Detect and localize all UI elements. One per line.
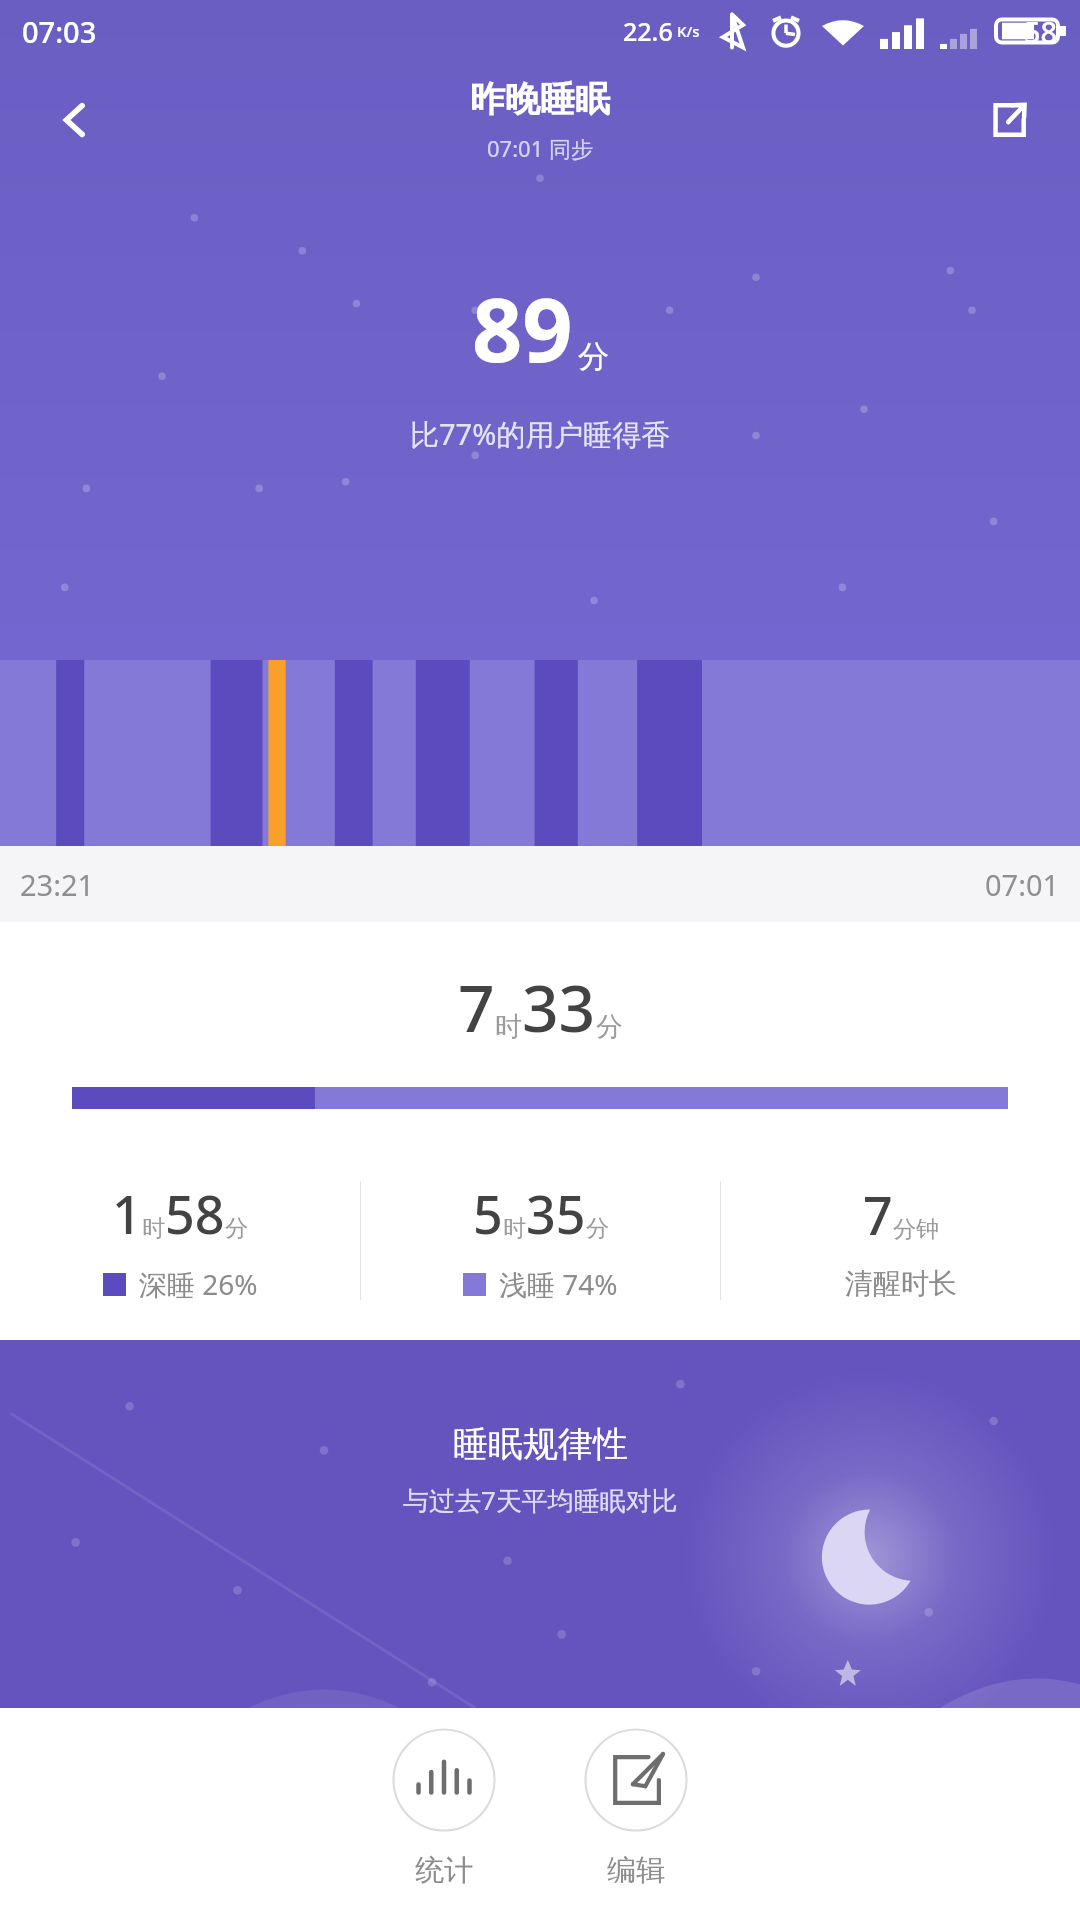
button[interactable]: Share xyxy=(976,87,1042,153)
staticText: 昨晚睡眠 xyxy=(470,77,610,121)
staticText: 7 xyxy=(863,1179,893,1250)
staticText: 统计 xyxy=(415,1852,473,1889)
button[interactable]: 7 xyxy=(721,1155,1080,1325)
button[interactable]: 5 xyxy=(361,1155,720,1325)
staticText: 分 xyxy=(578,337,609,376)
button[interactable]: Edit xyxy=(584,1728,688,1889)
staticText: 与过去7天平均睡眠对比 xyxy=(403,1482,678,1518)
staticText: 22.6 xyxy=(623,14,673,48)
staticText: 5 xyxy=(473,1178,503,1249)
staticText: 分钟 xyxy=(893,1215,939,1244)
staticText: 清醒时长 xyxy=(845,1266,957,1301)
button[interactable]: 1 xyxy=(0,1155,360,1325)
staticText: K/s xyxy=(677,21,700,41)
staticText: 1 xyxy=(112,1178,142,1249)
staticText: 23:21 xyxy=(20,865,95,904)
button[interactable]: 睡眠规律性 xyxy=(0,1340,1080,1708)
staticText: 分 xyxy=(225,1214,248,1243)
staticText: 分 xyxy=(596,1010,623,1044)
staticText: 89 xyxy=(472,268,573,388)
staticText: 58 xyxy=(1024,12,1058,51)
staticText: 07:01 同步 xyxy=(487,133,593,163)
staticText: 35 xyxy=(526,1178,586,1249)
staticText: 07:03 xyxy=(22,12,97,51)
staticText: 浅睡 74% xyxy=(499,1265,618,1303)
staticText: 33 xyxy=(522,964,596,1051)
staticText: 比77%的用户睡得香 xyxy=(410,414,671,454)
button[interactable]: Back xyxy=(42,87,108,153)
staticText: 07:01 xyxy=(985,865,1060,904)
staticText: 时 xyxy=(503,1214,526,1243)
staticText: 时 xyxy=(495,1010,522,1044)
button[interactable]: Statistics xyxy=(392,1728,496,1889)
staticText: 7 xyxy=(458,964,495,1051)
staticText: 编辑 xyxy=(607,1852,665,1889)
staticText: 时 xyxy=(142,1214,165,1243)
staticText: 58 xyxy=(165,1178,225,1249)
staticText: 分 xyxy=(586,1214,609,1243)
staticText: 深睡 26% xyxy=(139,1265,258,1303)
staticText: 睡眠规律性 xyxy=(453,1422,628,1466)
